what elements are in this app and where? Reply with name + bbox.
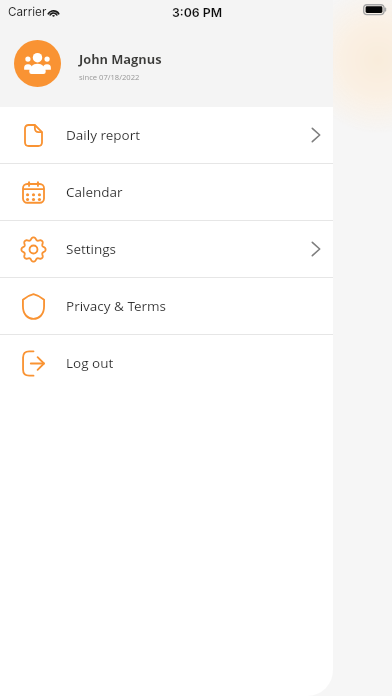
other: Open [311,127,321,143]
button[interactable]: John Magnus [0,0,333,107]
staticText: Log out [66,354,114,372]
button[interactable]: Log out [0,335,333,391]
staticText: Settings [66,240,117,258]
staticText: since 07/18/2022 [79,72,140,82]
other: Open [311,241,321,257]
button[interactable]: Daily report [0,107,333,163]
button[interactable]: Calendar [0,164,333,220]
button[interactable]: Privacy & Terms [0,278,333,334]
staticText: Carrier [8,5,47,19]
staticText: Daily report [66,126,141,144]
staticText: Calendar [66,183,123,201]
staticText: John Magnus [79,50,162,67]
staticText: 3:06 PM [172,5,223,20]
staticText: Privacy & Terms [66,297,167,315]
button[interactable]: Settings [0,221,333,277]
